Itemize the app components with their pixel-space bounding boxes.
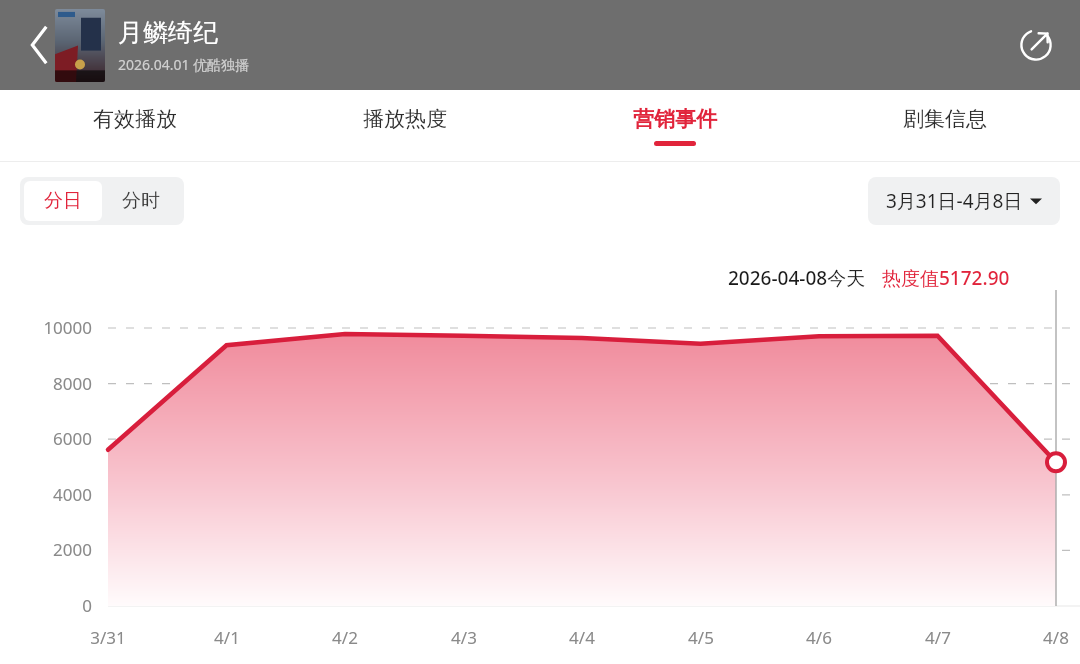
button[interactable]: Share (1010, 19, 1062, 71)
button[interactable]: 播放热度 (270, 90, 540, 162)
button[interactable]: Poster (55, 9, 105, 82)
staticText: 3/31 (90, 626, 126, 649)
staticText: 2000 (53, 538, 92, 561)
staticText: 2026-04-08今天 (728, 265, 866, 291)
staticText: 有效播放 (93, 106, 177, 132)
staticText: 10000 (43, 316, 92, 339)
button[interactable]: 分时 (102, 181, 180, 221)
staticText: 4/2 (332, 626, 358, 649)
staticText: 4/3 (451, 626, 477, 649)
staticText: 分日 (44, 189, 82, 213)
staticText: 8000 (53, 372, 92, 395)
staticText: 4/5 (688, 626, 714, 649)
staticText: 4/8 (1043, 626, 1069, 649)
button[interactable]: 2026-04-08今天 (706, 250, 1032, 306)
button[interactable]: 分日 (24, 181, 102, 221)
staticText: 月鳞绮纪 (118, 17, 218, 48)
staticText: 热度值5172.90 (882, 265, 1010, 291)
button[interactable]: 有效播放 (0, 90, 270, 162)
staticText: 0 (82, 594, 92, 617)
button[interactable]: 剧集信息 (810, 90, 1080, 162)
staticText: 剧集信息 (903, 106, 987, 132)
staticText: 6000 (53, 427, 92, 450)
staticText: 4000 (53, 483, 92, 506)
staticText: 分时 (122, 189, 160, 213)
staticText: 3月31日-4月8日 (886, 188, 1023, 214)
button[interactable]: Back (8, 17, 64, 73)
button[interactable]: 3月31日-4月8日 (868, 177, 1060, 225)
staticText: 4/4 (569, 626, 595, 649)
button[interactable]: 营销事件 (540, 90, 810, 162)
staticText: 4/1 (214, 626, 240, 649)
staticText: 2026.04.01 优酷独播 (118, 55, 250, 74)
staticText: 4/6 (806, 626, 832, 649)
staticText: 4/7 (925, 626, 951, 649)
staticText: 营销事件 (633, 106, 717, 132)
staticText: 播放热度 (363, 106, 447, 132)
